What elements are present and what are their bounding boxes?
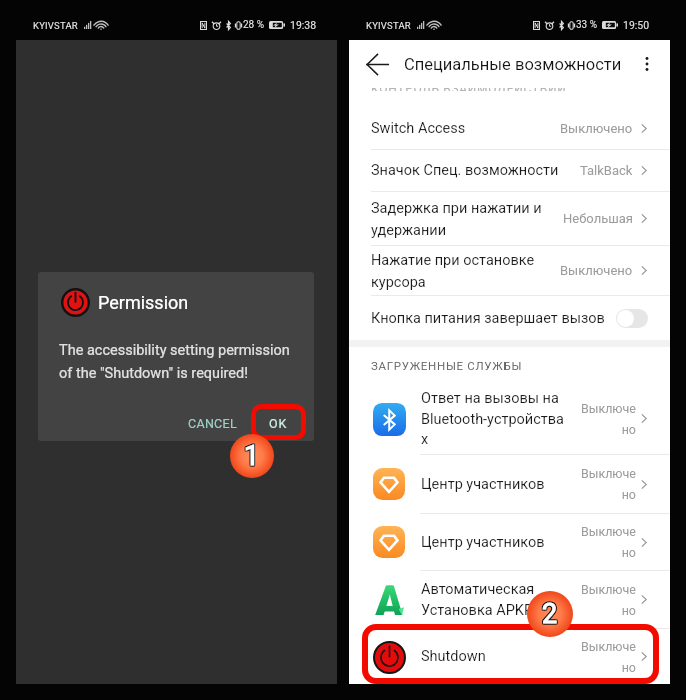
staticText: Выключе но: [580, 401, 636, 437]
staticText: 1: [244, 440, 260, 472]
staticText: Выключе но: [580, 639, 636, 675]
staticText: 2: [542, 597, 558, 629]
staticText: Специальные возможности: [404, 55, 630, 74]
button[interactable]: Кнопка питания завершает вызов: [349, 296, 670, 340]
staticText: Выключе но: [580, 524, 636, 560]
staticText: 28 %: [243, 19, 265, 31]
staticText: Значок Спец. возможности: [371, 162, 580, 179]
staticText: KYIVSTAR: [33, 20, 78, 31]
staticText: 2: [543, 598, 559, 630]
staticText: 2: [542, 599, 558, 631]
staticText: Выключе но: [580, 466, 636, 502]
staticText: Нажатие при остановке курсора: [371, 252, 560, 290]
staticText: Задержка при нажатии и удержании: [371, 200, 563, 238]
button[interactable]: Shutdown: [349, 629, 670, 684]
button[interactable]: OK: [255, 408, 302, 439]
button[interactable]: Автоматическая Установка APKR: [349, 571, 670, 628]
staticText: TalkBack: [580, 163, 633, 178]
staticText: Кнопка питания завершает вызов: [371, 310, 616, 327]
staticText: Ответ на вызовы на Bluetooth-устройства …: [421, 390, 580, 447]
button[interactable]: Switch Access: [349, 107, 670, 149]
button[interactable]: Центр участников: [349, 455, 670, 513]
button[interactable]: Back: [358, 45, 396, 83]
staticText: Выключено: [560, 263, 633, 278]
staticText: 1: [243, 440, 259, 472]
staticText: 1: [243, 439, 259, 471]
staticText: 2: [541, 598, 557, 630]
staticText: Центр участников: [421, 476, 580, 493]
staticText: 1: [243, 441, 259, 473]
staticText: Центр участников: [421, 534, 580, 551]
staticText: Выключено: [560, 121, 633, 136]
button[interactable]: Центр участников: [349, 514, 670, 570]
button[interactable]: Нажатие при остановке курсора: [349, 246, 670, 295]
staticText: Switch Access: [371, 120, 560, 137]
button[interactable]: Toggle power button ends call: [616, 309, 648, 328]
staticText: Небольшая: [563, 211, 633, 226]
button[interactable]: Permission: [38, 272, 314, 441]
staticText: КОНТРОЛЬ ВЗАИМОДЕЙСТВИЙ: [371, 88, 567, 91]
staticText: OK: [269, 416, 288, 431]
staticText: 2: [543, 597, 559, 629]
staticText: 1: [245, 439, 261, 471]
staticText: 2: [541, 597, 557, 629]
staticText: 19:50: [623, 19, 650, 31]
staticText: 2: [542, 598, 558, 630]
button[interactable]: Ответ на вызовы на Bluetooth-устройства …: [349, 383, 670, 454]
staticText: 19:38: [290, 19, 317, 31]
staticText: The accessibility setting permission of …: [59, 342, 290, 382]
staticText: 33 %: [576, 19, 598, 31]
button[interactable]: Значок Спец. возможности: [349, 150, 670, 191]
button[interactable]: CANCEL: [177, 408, 248, 439]
button[interactable]: More options: [630, 47, 664, 81]
staticText: 2: [543, 599, 559, 631]
staticText: CANCEL: [188, 416, 237, 431]
staticText: ЗАГРУЖЕННЫЕ СЛУЖБЫ: [371, 359, 523, 372]
staticText: 2: [541, 599, 557, 631]
staticText: KYIVSTAR: [366, 20, 411, 31]
staticText: Автоматическая Установка APKR: [421, 581, 580, 618]
staticText: 1: [245, 440, 261, 472]
staticText: Permission: [98, 292, 189, 313]
staticText: 1: [244, 439, 260, 471]
staticText: 1: [244, 441, 260, 473]
staticText: Shutdown: [421, 648, 580, 665]
button[interactable]: Задержка при нажатии и удержании: [349, 192, 670, 245]
staticText: 1: [245, 441, 261, 473]
staticText: Выключе но: [580, 582, 636, 618]
